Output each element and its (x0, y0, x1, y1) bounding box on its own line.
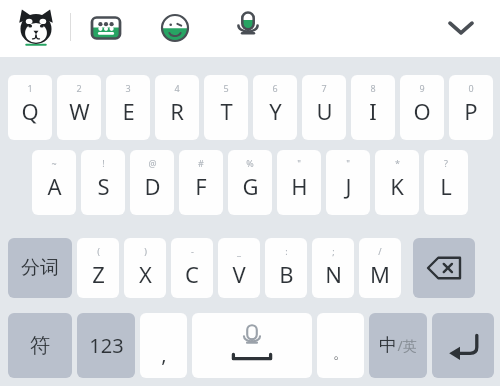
staticText: K (390, 171, 404, 201)
button[interactable]: / (359, 238, 401, 298)
staticText: 4 (174, 82, 180, 94)
button[interactable]: 123 (77, 313, 135, 378)
button[interactable]: ; (312, 238, 354, 298)
staticText: H (291, 171, 308, 201)
staticText: ) (144, 245, 147, 257)
staticText: 9 (419, 82, 425, 94)
staticText: P (464, 96, 478, 126)
button[interactable]: Hide keyboard (440, 10, 482, 46)
staticText: ( (97, 245, 100, 257)
button[interactable]: Emoji (155, 10, 195, 46)
staticText: Q (21, 96, 39, 126)
staticText: ; (332, 245, 335, 257)
button[interactable]: ( (77, 238, 119, 298)
button[interactable]: - (171, 238, 213, 298)
staticText: % (246, 157, 254, 169)
staticText: @ (148, 157, 157, 169)
staticText: 符 (30, 333, 50, 358)
staticText: * (395, 157, 400, 169)
button[interactable]: : (265, 238, 307, 298)
staticText: ? (444, 157, 448, 169)
button[interactable]: Space (192, 313, 312, 378)
staticText: ! (102, 157, 105, 169)
button[interactable]: ? (424, 150, 468, 215)
staticText: 0 (468, 82, 474, 94)
button[interactable]: ~ (32, 150, 76, 215)
button[interactable]: # (179, 150, 223, 215)
button[interactable]: , (140, 313, 187, 378)
staticText: 6 (272, 82, 278, 94)
button[interactable]: 5 (204, 75, 248, 140)
staticText: O (413, 96, 431, 126)
staticText: 。 (333, 344, 348, 363)
button[interactable]: Backspace (413, 238, 475, 298)
staticText: V (232, 259, 246, 289)
staticText: 123 (89, 332, 124, 359)
staticText: A (47, 171, 62, 201)
staticText: 5 (223, 82, 229, 94)
staticText: Y (269, 96, 282, 126)
staticText: L (440, 171, 452, 201)
button[interactable]: Input method logo (14, 7, 58, 49)
staticText: / (378, 245, 382, 257)
button[interactable]: 3 (106, 75, 150, 140)
button[interactable]: % (228, 150, 272, 215)
staticText: 1 (27, 82, 33, 94)
staticText: T (220, 96, 233, 126)
button[interactable]: 。 (317, 313, 364, 378)
staticText: 中 (379, 334, 397, 357)
staticText: E (122, 96, 135, 126)
staticText: R (170, 96, 184, 126)
button[interactable]: 1 (8, 75, 52, 140)
button[interactable]: 7 (302, 75, 346, 140)
staticText: C (185, 259, 199, 289)
button[interactable]: 2 (57, 75, 101, 140)
button[interactable]: Voice input (228, 9, 268, 47)
button[interactable]: 中 (369, 313, 427, 378)
staticText: " (297, 157, 301, 169)
staticText: N (325, 259, 342, 289)
staticText: I (369, 96, 377, 126)
staticText: ~ (51, 157, 57, 169)
staticText: 分词 (21, 256, 59, 280)
staticText: Z (92, 259, 105, 289)
staticText: S (97, 171, 110, 201)
staticText: W (69, 96, 90, 126)
button[interactable]: Switch keyboard layout (86, 10, 126, 46)
staticText: M (370, 259, 390, 289)
button[interactable]: @ (130, 150, 174, 215)
staticText: U (316, 96, 333, 126)
staticText: D (144, 171, 161, 201)
staticText: 8 (370, 82, 376, 94)
button[interactable]: * (375, 150, 419, 215)
button[interactable]: 4 (155, 75, 199, 140)
staticText: F (195, 171, 207, 201)
button[interactable]: 9 (400, 75, 444, 140)
staticText: # (198, 157, 204, 169)
staticText: B (279, 259, 294, 289)
button[interactable]: 符 (8, 313, 72, 378)
button[interactable]: ) (124, 238, 166, 298)
staticText: 2 (76, 82, 82, 94)
staticText: G (242, 171, 259, 201)
staticText: _ (237, 245, 241, 257)
button[interactable]: 0 (449, 75, 493, 140)
staticText: 3 (125, 82, 131, 94)
staticText: /英 (397, 336, 417, 355)
staticText: : (285, 245, 288, 257)
staticText: X (139, 259, 152, 289)
staticText: 7 (321, 82, 327, 94)
staticText: J (345, 171, 352, 201)
button[interactable]: _ (218, 238, 260, 298)
button[interactable]: " (326, 150, 370, 215)
button[interactable]: Enter (432, 313, 494, 378)
button[interactable]: 分词 (8, 238, 72, 298)
button[interactable]: " (277, 150, 321, 215)
button[interactable]: ! (81, 150, 125, 215)
staticText: - (191, 245, 194, 257)
button[interactable]: 6 (253, 75, 297, 140)
staticText: " (346, 157, 350, 169)
staticText: , (161, 341, 167, 368)
button[interactable]: 8 (351, 75, 395, 140)
